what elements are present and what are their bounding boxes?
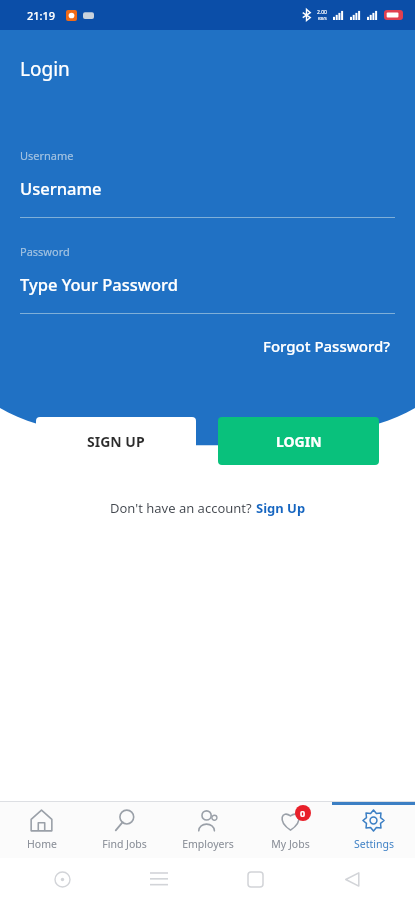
button[interactable]: Employers	[166, 802, 249, 858]
staticText: Forgot Password?	[263, 336, 391, 356]
staticText: Don't have an account?	[110, 499, 256, 517]
staticText: Username	[20, 177, 102, 199]
other: Employers	[196, 809, 219, 832]
staticText: 21:19	[27, 8, 56, 23]
staticText: Type Your Password	[20, 273, 178, 295]
staticText: 2.00	[317, 9, 327, 16]
staticText: Find Jobs	[102, 837, 147, 851]
staticText: 0	[300, 807, 306, 819]
other: Settings	[362, 809, 385, 832]
staticText: KB/S	[318, 16, 327, 21]
staticText: Home	[27, 837, 57, 851]
button[interactable]: Find Jobs	[83, 802, 166, 858]
button[interactable]: My Jobs	[249, 802, 332, 858]
button[interactable]: Type Your Password	[20, 273, 395, 295]
button[interactable]: Username	[20, 177, 395, 199]
staticText: LOGIN	[276, 432, 322, 451]
staticText: Password	[20, 244, 70, 259]
staticText: Settings	[354, 837, 394, 851]
staticText: Login	[20, 56, 70, 82]
button[interactable]: Sign Up	[256, 499, 306, 517]
other: Find Jobs	[113, 809, 136, 832]
button[interactable]: Home	[0, 802, 83, 858]
button[interactable]: Forgot Password?	[259, 332, 395, 360]
button[interactable]: SIGN UP	[36, 417, 196, 465]
staticText: Sign Up	[256, 499, 306, 517]
other: Home	[30, 809, 53, 832]
staticText: Username	[20, 148, 74, 163]
button[interactable]: LOGIN	[218, 417, 379, 465]
staticText: Employers	[182, 837, 234, 851]
staticText: My Jobs	[271, 837, 310, 851]
other: My Jobs	[279, 809, 302, 832]
staticText: SIGN UP	[87, 432, 145, 451]
button[interactable]: Settings	[332, 802, 415, 858]
